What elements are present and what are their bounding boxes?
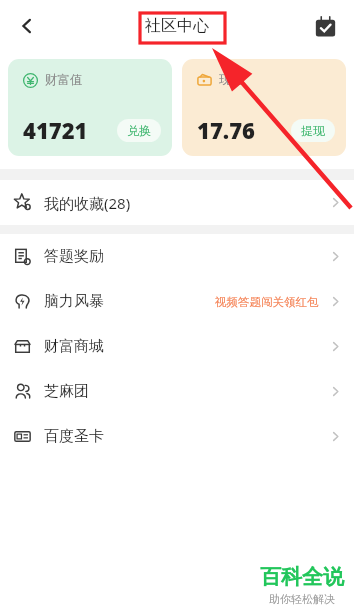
staticText: 脑力风暴	[44, 292, 104, 311]
staticText: 助你轻松解决	[269, 592, 335, 606]
staticText: 答题奖励	[44, 247, 104, 266]
staticText: 百科全说	[260, 564, 344, 590]
button[interactable]: 兑换	[117, 119, 161, 142]
staticText: 17.76	[197, 115, 255, 145]
staticText: 社区中心	[145, 16, 209, 36]
staticText: 提现	[301, 123, 325, 138]
staticText: 视频答题闯关领红包	[215, 295, 319, 309]
button[interactable]: 脑力风暴	[0, 279, 354, 324]
staticText: 现金	[219, 72, 244, 88]
button[interactable]: 百度圣卡	[0, 414, 354, 459]
button[interactable]: 芝麻团	[0, 369, 354, 414]
button[interactable]: 提现	[291, 119, 335, 142]
staticText: 财富值	[45, 72, 83, 88]
staticText: 我的收藏(28)	[44, 193, 131, 213]
button[interactable]: 财富值	[8, 59, 172, 156]
staticText: 财富商城	[44, 337, 104, 356]
button[interactable]: 答题奖励	[0, 234, 354, 279]
button[interactable]: Back	[6, 5, 48, 47]
staticText: 芝麻团	[44, 382, 89, 401]
button[interactable]: 现金	[182, 59, 346, 156]
button[interactable]: Calendar check-in	[304, 5, 346, 47]
staticText: 兑换	[127, 123, 151, 138]
button[interactable]: 财富商城	[0, 324, 354, 369]
button[interactable]: 我的收藏(28)	[0, 180, 354, 225]
staticText: 百度圣卡	[44, 427, 104, 446]
staticText: 41721	[23, 115, 88, 145]
